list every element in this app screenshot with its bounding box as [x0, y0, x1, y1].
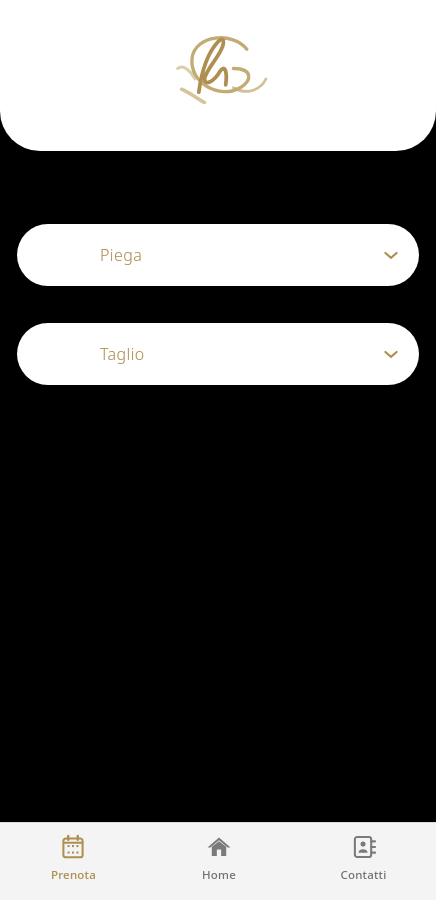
staticText: Piega: [100, 244, 143, 266]
other: Logo: [170, 30, 266, 104]
staticText: Home: [202, 867, 236, 883]
staticText: Contatti: [340, 867, 387, 883]
button[interactable]: Taglio: [17, 323, 419, 385]
button[interactable]: Home: [146, 823, 291, 900]
other: Contatti: [352, 835, 376, 859]
other: Home: [207, 835, 231, 859]
button[interactable]: Prenota: [0, 823, 146, 900]
button[interactable]: Piega: [17, 224, 419, 286]
staticText: Prenota: [51, 867, 96, 883]
staticText: Taglio: [100, 343, 145, 365]
button[interactable]: Contatti: [291, 823, 436, 900]
other: Prenota: [61, 835, 85, 859]
